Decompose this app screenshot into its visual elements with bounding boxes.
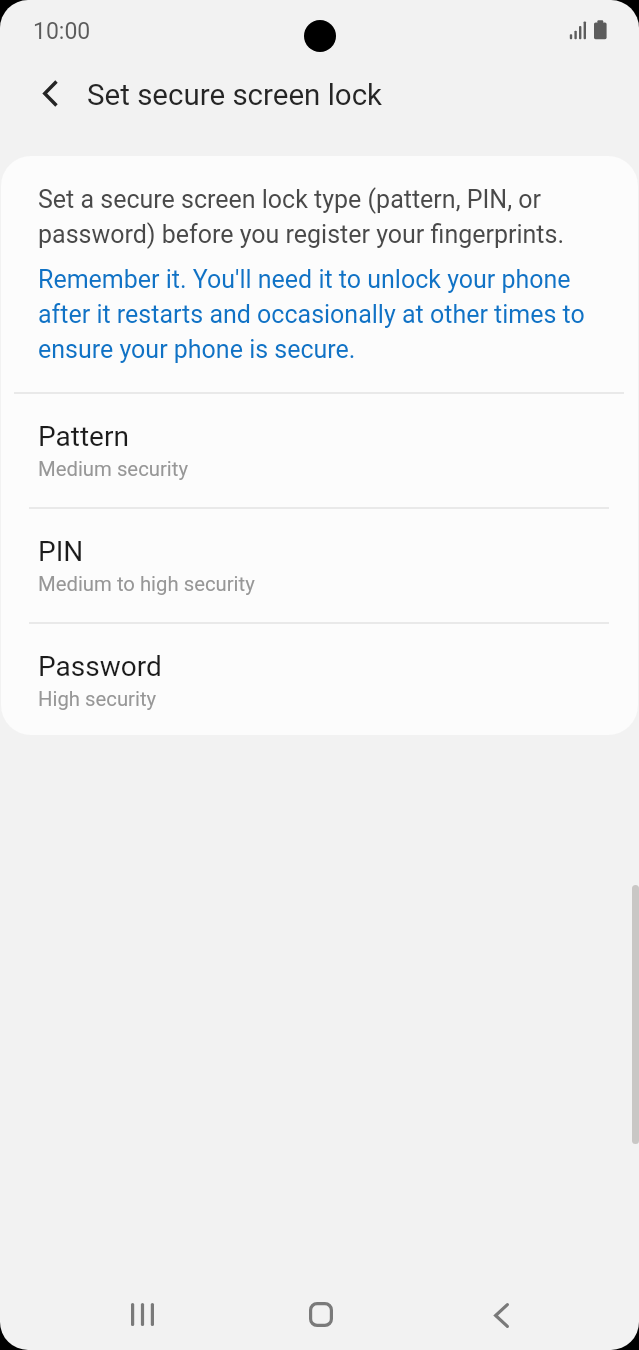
staticText: Pattern [38,420,129,453]
button[interactable]: Pattern [1,394,638,507]
staticText: 10:00 [33,20,91,44]
button[interactable]: Back [461,1277,542,1350]
button[interactable]: PIN [1,509,638,622]
button[interactable]: Home [280,1276,361,1350]
staticText: Password [38,650,162,683]
button[interactable]: Navigate up [18,61,82,125]
staticText: Set a secure screen lock type (pattern, … [38,180,598,250]
staticText: Medium security [38,459,188,480]
button[interactable]: Password [1,624,638,735]
staticText: PIN [38,535,84,568]
staticText: Remember it. You'll need it to unlock yo… [38,260,598,365]
staticText: Set secure screen lock [87,78,383,113]
staticText: Medium to high security [38,574,255,595]
button[interactable]: Recent apps [102,1276,183,1350]
staticText: High security [38,689,157,710]
